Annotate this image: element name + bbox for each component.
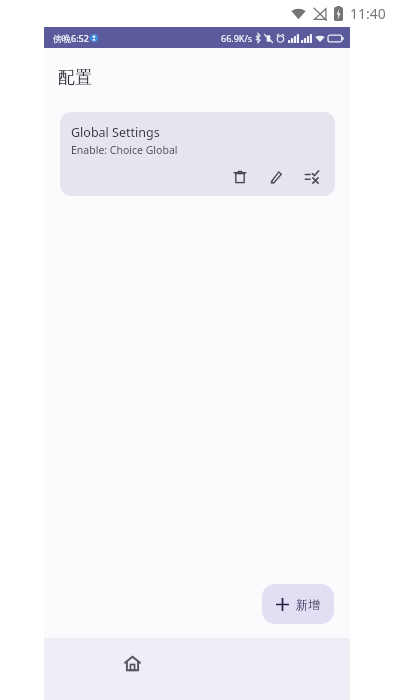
button[interactable]: Edit xyxy=(263,164,289,190)
button[interactable]: 新增 xyxy=(262,584,334,624)
staticText: 傍晚6:52 xyxy=(53,32,89,44)
button[interactable]: Home xyxy=(104,646,160,680)
staticText: 66.9K/s xyxy=(221,32,253,44)
button[interactable]: Delete xyxy=(227,164,253,190)
staticText: Global Settings xyxy=(71,124,160,141)
button[interactable]: Select xyxy=(299,164,325,190)
staticText: 新增 xyxy=(296,597,320,612)
staticText: Enable: Choice Global xyxy=(71,143,178,157)
staticText: 配置 xyxy=(58,67,92,88)
staticText: 11:40 xyxy=(350,4,386,23)
button[interactable]: Global Settings xyxy=(60,112,335,196)
